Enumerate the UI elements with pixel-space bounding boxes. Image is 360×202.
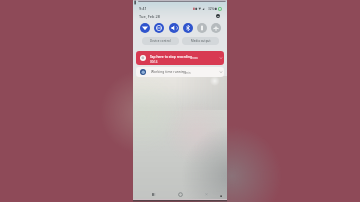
staticText: 32% [208,7,215,11]
staticText: 1 min [183,71,191,75]
staticText: Device control [150,39,171,43]
button[interactable]: Bluetooth [183,23,193,33]
button[interactable]: Sound [169,23,179,33]
staticText: Working time running [151,70,186,74]
staticText: now [192,56,198,60]
button[interactable]: Airplane mode [211,23,221,33]
button[interactable]: Wi-Fi [140,23,150,33]
staticText: 00:14 [150,60,158,64]
staticText: Tue, Feb 28 [139,14,160,19]
button[interactable]: Media output [182,37,219,45]
staticText: Media output [191,39,211,43]
staticText: 9:41 [139,6,147,11]
button[interactable]: Recents [148,190,157,199]
button[interactable]: Home [176,190,185,199]
button[interactable]: Device control [142,37,179,45]
other: Expand [219,70,223,74]
button[interactable]: Back [202,190,211,199]
button[interactable]: Tap here to stop recording [136,51,224,65]
button[interactable]: Flashlight [197,23,207,33]
button[interactable]: Settings [216,14,220,18]
staticText: Tap here to stop recording [150,55,193,59]
other: Expand [219,56,223,60]
button[interactable]: Mobile data [154,23,164,33]
button[interactable]: Working time running [136,67,224,77]
